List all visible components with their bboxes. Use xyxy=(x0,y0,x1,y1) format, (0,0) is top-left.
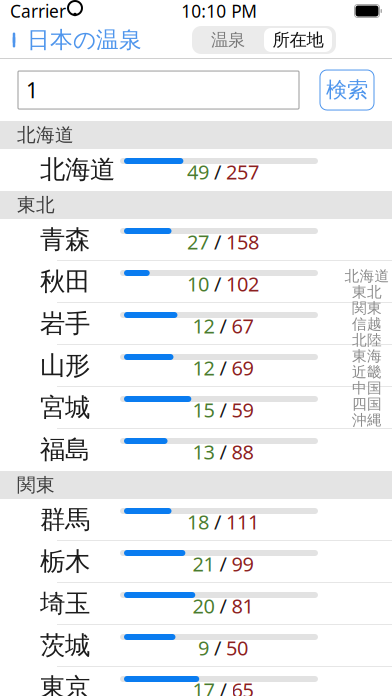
button[interactable]: 福島 xyxy=(0,429,392,471)
staticText: / xyxy=(214,550,231,577)
staticText: 10 xyxy=(187,270,209,297)
staticText: / xyxy=(214,676,231,696)
button[interactable]: 近畿 xyxy=(344,365,390,379)
staticText: / xyxy=(209,228,226,255)
staticText: 18 xyxy=(187,508,209,535)
staticText: 中国 xyxy=(352,379,382,397)
staticText: 21 xyxy=(192,550,214,577)
staticText: 9 xyxy=(198,634,209,661)
staticText: / xyxy=(214,396,231,423)
staticText: / xyxy=(214,592,231,619)
staticText: 青森 xyxy=(40,224,90,255)
staticText: 67 xyxy=(231,312,253,339)
staticText: 13 xyxy=(192,438,214,465)
staticText: 検索 xyxy=(326,77,368,103)
staticText: 栃木 xyxy=(40,546,90,577)
staticText: / xyxy=(214,354,231,381)
staticText: 257 xyxy=(226,158,259,185)
staticText: 10:10 PM xyxy=(181,0,257,22)
staticText: 東北 xyxy=(17,193,55,216)
staticText: 49 xyxy=(187,158,209,185)
button[interactable]: 検索 xyxy=(320,70,374,110)
button[interactable]: 埼玉 xyxy=(0,583,392,625)
staticText: 1 xyxy=(26,76,38,104)
staticText: Carrier xyxy=(10,0,66,22)
staticText: 日本の温泉 xyxy=(27,26,142,54)
staticText: 群馬 xyxy=(40,504,90,535)
staticText: 近畿 xyxy=(352,363,382,381)
staticText: 81 xyxy=(231,592,253,619)
staticText: / xyxy=(209,508,226,535)
staticText: 50 xyxy=(226,634,248,661)
button[interactable]: 信越 xyxy=(344,317,390,331)
button[interactable]: 北陸 xyxy=(344,333,390,347)
staticText: 27 xyxy=(187,228,209,255)
staticText: 温泉 xyxy=(211,29,245,51)
staticText: 宮城 xyxy=(40,392,90,423)
staticText: 111 xyxy=(226,508,259,535)
staticText: 東北 xyxy=(352,283,382,301)
button[interactable]: 東海 xyxy=(344,349,390,363)
staticText: 102 xyxy=(226,270,259,297)
staticText: / xyxy=(214,438,231,465)
staticText: 東京 xyxy=(40,672,90,696)
staticText: 15 xyxy=(192,396,214,423)
button[interactable]: 宮城 xyxy=(0,387,392,429)
button[interactable]: 日本の温泉 xyxy=(0,20,142,60)
staticText: / xyxy=(209,634,226,661)
button[interactable]: 群馬 xyxy=(0,499,392,541)
staticText: 65 xyxy=(231,676,253,696)
staticText: 秋田 xyxy=(40,266,90,297)
staticText: 四国 xyxy=(352,395,382,413)
staticText: 158 xyxy=(226,228,259,255)
button[interactable]: 1 xyxy=(18,71,299,109)
button[interactable]: 所在地 xyxy=(262,26,334,54)
button[interactable]: 温泉 xyxy=(194,28,262,52)
staticText: 12 xyxy=(192,312,214,339)
button[interactable]: 秋田 xyxy=(0,261,392,303)
staticText: 北海道 xyxy=(17,123,74,146)
staticText: 山形 xyxy=(40,350,90,381)
staticText: 69 xyxy=(231,354,253,381)
staticText: 北陸 xyxy=(352,331,382,349)
button[interactable]: 北海道 xyxy=(344,269,390,283)
staticText: 99 xyxy=(231,550,253,577)
staticText: 17 xyxy=(192,676,214,696)
staticText: 所在地 xyxy=(272,29,323,51)
staticText: 茨城 xyxy=(40,630,90,661)
button[interactable]: 青森 xyxy=(0,219,392,261)
button[interactable]: 東北 xyxy=(344,285,390,299)
button[interactable]: 栃木 xyxy=(0,541,392,583)
staticText: 埼玉 xyxy=(40,588,90,619)
staticText: 関東 xyxy=(17,473,55,496)
staticText: 12 xyxy=(192,354,214,381)
button[interactable]: 北海道 xyxy=(0,149,392,191)
staticText: / xyxy=(209,270,226,297)
staticText: / xyxy=(214,312,231,339)
staticText: 北海道 xyxy=(344,267,389,285)
staticText: 福島 xyxy=(40,434,90,465)
staticText: 20 xyxy=(192,592,214,619)
button[interactable]: 茨城 xyxy=(0,625,392,667)
button[interactable]: 東京 xyxy=(0,667,392,696)
button[interactable]: 山形 xyxy=(0,345,392,387)
button[interactable]: 中国 xyxy=(344,381,390,395)
button[interactable]: 岩手 xyxy=(0,303,392,345)
staticText: 北海道 xyxy=(40,154,115,185)
staticText: 59 xyxy=(231,396,253,423)
staticText: / xyxy=(209,158,226,185)
staticText: 信越 xyxy=(352,315,382,333)
staticText: 88 xyxy=(231,438,253,465)
staticText: 東海 xyxy=(352,347,382,365)
button[interactable]: 四国 xyxy=(344,397,390,411)
staticText: 関東 xyxy=(352,299,382,317)
staticText: 岩手 xyxy=(40,308,90,339)
button[interactable]: 沖縄 xyxy=(344,413,390,427)
staticText: 沖縄 xyxy=(352,411,382,429)
button[interactable]: 関東 xyxy=(344,301,390,315)
